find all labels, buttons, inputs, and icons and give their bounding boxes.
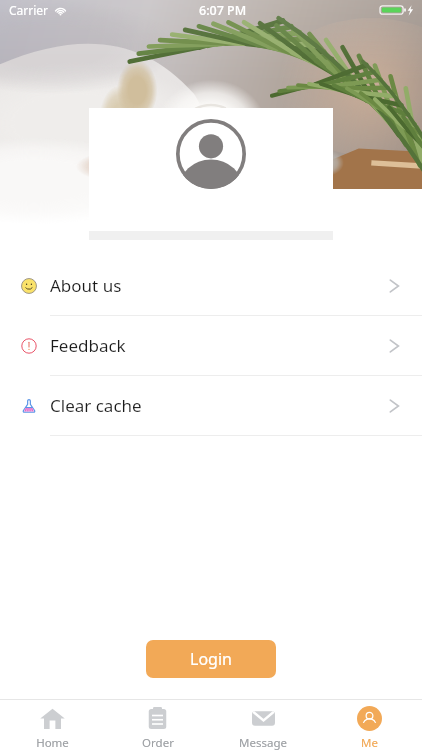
staticText: Carrier (9, 2, 49, 18)
staticText: Home (36, 735, 69, 750)
staticText: Order (142, 735, 174, 750)
button[interactable]: Home (0, 706, 105, 750)
button[interactable]: Feedback (0, 316, 422, 376)
staticText: Me (361, 735, 378, 750)
staticText: Clear cache (50, 394, 142, 417)
button[interactable]: Order (105, 706, 210, 750)
staticText: Feedback (50, 334, 126, 357)
button[interactable]: Login (146, 640, 276, 678)
button[interactable]: Clear cache (0, 376, 422, 436)
staticText: About us (50, 274, 122, 297)
button[interactable]: Me (316, 706, 422, 750)
staticText: Message (239, 735, 287, 750)
button[interactable]: Message (210, 706, 316, 750)
staticText: 6:07 PM (199, 2, 247, 19)
button[interactable]: About us (0, 256, 422, 316)
staticText: Login (190, 648, 232, 670)
